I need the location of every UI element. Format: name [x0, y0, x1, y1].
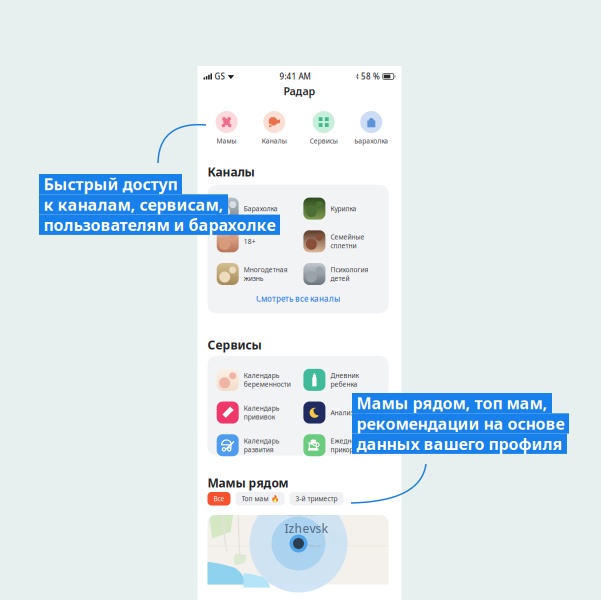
staticText: 3-й триместр [295, 494, 337, 503]
staticText: Россия [308, 543, 320, 548]
button[interactable]: Психология детей [303, 258, 386, 290]
staticText: Быстрый доступ [43, 173, 177, 195]
button[interactable]: Каналы [262, 111, 287, 149]
button[interactable]: 3-й триместр [289, 492, 343, 505]
staticText: Каналы [262, 137, 287, 145]
staticText: Календарь прививок [244, 404, 280, 421]
button[interactable]: Анализ сна [303, 396, 386, 429]
button[interactable]: Календарь беременности [217, 363, 299, 396]
staticText: Психология детей [330, 265, 368, 283]
staticText: Календарь развития [244, 436, 280, 454]
button[interactable]: Курилка [303, 192, 386, 225]
staticText: данных вашего профиля [356, 433, 562, 454]
staticText: Топ мам 🔥 [241, 494, 278, 503]
staticText: Мамы рядом, топ мам, [356, 392, 547, 414]
staticText: Семейные сплетни [330, 232, 364, 250]
staticText: Мамы [217, 137, 237, 145]
staticText: Барахолка [354, 137, 388, 145]
staticText: Сервисы [310, 137, 338, 145]
button[interactable]: Календарь развития [217, 429, 299, 462]
staticText: Барахолка [244, 204, 278, 213]
staticText: Ежедневный прикорм [330, 436, 372, 454]
staticText: рекомендации на основе [356, 413, 564, 434]
staticText: Каналы [207, 164, 254, 180]
button[interactable]: Многодетная жизнь [217, 258, 299, 290]
button[interactable]: Ежедневный прикорм [303, 429, 386, 462]
button[interactable]: Дневник ребенка [303, 363, 386, 396]
staticText: к каналам, сервисам, [43, 194, 223, 215]
staticText: Курилка [330, 204, 356, 213]
button[interactable]: Сервисы [310, 111, 338, 149]
staticText: пользователям и барахолке [43, 214, 275, 235]
staticText: Смотреть все каналы [256, 293, 340, 304]
staticText: Сервисы [207, 337, 261, 353]
staticText: Дневник ребенка [330, 371, 359, 389]
staticText: Анализ сна [330, 408, 366, 417]
staticText: GS [214, 71, 224, 82]
staticText: Календарь беременности [244, 371, 291, 389]
staticText: 18+ [244, 237, 256, 246]
staticText: Izhevsk [284, 520, 328, 536]
staticText: Все [213, 494, 224, 503]
staticText: 9:41 AM [279, 71, 310, 82]
staticText: Многодетная жизнь [244, 265, 288, 283]
button[interactable]: 18+ [217, 225, 299, 258]
button[interactable]: Топ мам 🔥 [235, 492, 284, 505]
staticText: Мамы рядом [207, 475, 288, 491]
button[interactable]: Мамы [216, 111, 238, 149]
button[interactable]: Календарь прививок [217, 396, 299, 429]
button[interactable]: Все [207, 492, 230, 505]
staticText: Заречное шоссе [287, 511, 316, 517]
staticText: 58 % [361, 71, 380, 82]
button[interactable]: Барахолка [354, 111, 388, 149]
button[interactable]: Семейные сплетни [303, 225, 386, 258]
button[interactable]: Смотреть все каналы [207, 288, 388, 310]
staticText: Радар [283, 84, 315, 98]
button[interactable]: Барахолка [217, 192, 299, 225]
